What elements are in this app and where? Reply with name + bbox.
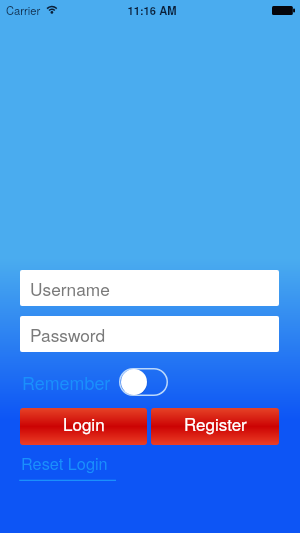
button[interactable]: Password <box>20 316 279 352</box>
staticText: 11:16 AM <box>127 2 177 18</box>
other: Battery full <box>272 6 295 15</box>
button[interactable]: Register <box>151 408 279 445</box>
staticText: Register <box>184 411 247 435</box>
other: Wi-Fi signal <box>46 5 58 15</box>
staticText: Carrier <box>6 2 41 18</box>
staticText: Username <box>30 276 110 301</box>
button[interactable]: Username <box>20 270 279 306</box>
staticText: Password <box>30 322 106 347</box>
staticText: Remember <box>22 369 111 393</box>
staticText: Login <box>63 411 105 435</box>
button[interactable]: Reset Login <box>19 451 119 482</box>
button[interactable]: Remember me toggle <box>119 368 168 396</box>
button[interactable]: Login <box>20 408 147 445</box>
staticText: Reset Login <box>21 451 108 474</box>
